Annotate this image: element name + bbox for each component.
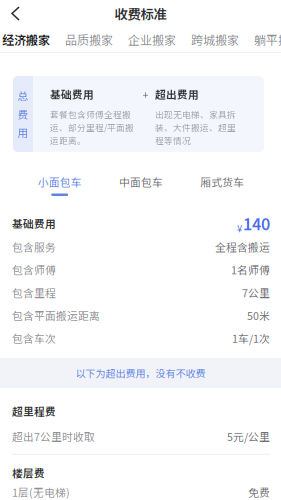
staticText: 楼层费 [12,465,45,480]
staticText: 5元/公里 [227,429,270,444]
staticText: 企业搬家 [128,31,176,48]
staticText: 140 [243,212,270,235]
staticText: 包含车次 [12,330,56,346]
button[interactable]: 躺平搬家 [254,27,281,52]
staticText: 小面包车 [38,174,82,189]
staticText: 50米 [247,308,270,323]
staticText: 厢式货车 [200,174,244,189]
staticText: 出现无电梯、家具拆装、大件搬运、超里程等情况 [155,108,236,146]
staticText: 以下为超出费用，没有不收费 [75,366,205,380]
button[interactable]: Back [0,0,34,27]
staticText: 1名师傅 [231,262,270,277]
staticText: 躺平搬家 [254,31,281,48]
staticText: 跨城搬家 [191,31,239,48]
button[interactable]: 厢式货车 [182,174,263,196]
staticText: 中面包车 [119,174,163,189]
staticText: 套餐包含师傅全程搬运、部分里程/平面搬运距离。 [50,108,134,146]
staticText: 超里程费 [12,403,56,419]
staticText: 费 [17,106,28,122]
staticText: 总 [17,88,28,103]
staticText: 用 [17,125,28,140]
staticText: 品质搬家 [65,31,113,48]
staticText: 包含里程 [12,285,56,300]
staticText: 经济搬家 [2,31,50,48]
button[interactable]: 跨城搬家 [191,27,239,52]
staticText: 全程含搬运 [215,239,270,255]
staticText: + [142,86,148,102]
button[interactable]: 中面包车 [100,174,182,196]
button[interactable]: 经济搬家 [2,27,50,52]
staticText: ¥ [237,221,242,235]
staticText: 包含服务 [12,239,56,255]
staticText: 7公里 [242,285,270,300]
button[interactable]: 小面包车 [19,174,100,196]
staticText: 超出费用 [155,86,199,102]
staticText: 收费标准 [114,4,166,23]
staticText: 基础费用 [50,86,94,102]
staticText: 免费 [248,484,270,500]
staticText: 包含平面搬运距离 [12,308,100,323]
staticText: 包含师傅 [12,262,56,277]
staticText: 超出7公里时收取 [12,429,95,444]
staticText: 1车/1次 [232,330,270,346]
staticText: 基础费用 [12,215,56,231]
button[interactable]: 品质搬家 [65,27,113,52]
staticText: 1层(无电梯) [12,484,70,500]
button[interactable]: 企业搬家 [128,27,176,52]
